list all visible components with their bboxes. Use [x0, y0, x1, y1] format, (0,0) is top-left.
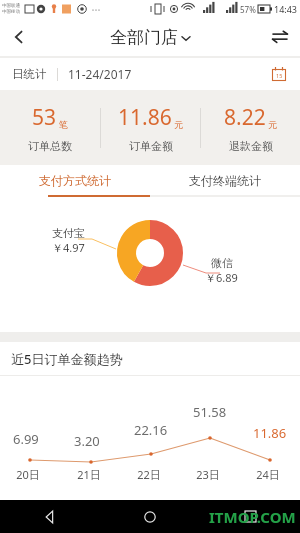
- staticText: 中国联通: [2, 3, 20, 9]
- staticText: 23日: [196, 467, 220, 482]
- staticText: 53: [32, 103, 57, 132]
- button[interactable]: 53: [0, 103, 100, 153]
- button[interactable]: Pick date: [266, 61, 292, 87]
- staticText: 元: [174, 119, 183, 130]
- staticText: 8.22: [224, 103, 266, 132]
- button[interactable]: 8.22: [201, 103, 300, 153]
- button[interactable]: Recents: [200, 500, 300, 533]
- button[interactable]: Back: [0, 18, 38, 56]
- staticText: ￥6.89: [205, 270, 238, 285]
- staticText: 全部门店: [110, 27, 178, 48]
- button[interactable]: 11.86: [101, 103, 200, 153]
- staticText: 24日: [256, 467, 280, 482]
- button[interactable]: 支付终端统计: [150, 165, 300, 195]
- staticText: 订单金额: [129, 139, 173, 153]
- staticText: 21日: [77, 467, 101, 482]
- staticText: 11-24/2017: [68, 66, 132, 82]
- staticText: ￥4.97: [52, 240, 85, 255]
- staticText: 15: [276, 72, 283, 79]
- staticText: 51.58: [193, 403, 227, 421]
- staticText: 支付方式统计: [39, 173, 111, 188]
- button[interactable]: 支付方式统计: [0, 165, 150, 195]
- button[interactable]: 全部门店: [110, 27, 191, 48]
- button[interactable]: Home: [100, 500, 200, 533]
- staticText: 20日: [16, 467, 40, 482]
- staticText: 笔: [59, 119, 68, 130]
- staticText: 6.99: [13, 430, 39, 448]
- staticText: 元: [268, 119, 277, 130]
- staticText: 订单总数: [28, 139, 72, 153]
- staticText: 11.86: [253, 424, 287, 442]
- staticText: ITMOP.COM: [209, 507, 296, 527]
- staticText: 微信: [211, 256, 233, 270]
- staticText: 近5日订单金额趋势: [11, 350, 123, 368]
- staticText: 57%: [240, 4, 256, 15]
- staticText: 日统计: [12, 67, 47, 81]
- staticText: 22.16: [134, 421, 168, 439]
- staticText: 3.20: [74, 432, 100, 450]
- staticText: 11.86: [118, 103, 172, 132]
- staticText: 中国移动: [2, 9, 20, 15]
- staticText: 支付宝: [52, 226, 85, 240]
- button[interactable]: Switch: [260, 18, 300, 56]
- button[interactable]: Back: [0, 500, 100, 533]
- staticText: 22日: [137, 467, 161, 482]
- staticText: 退款金额: [229, 139, 273, 153]
- staticText: 14:43: [274, 3, 298, 15]
- staticText: 支付终端统计: [189, 173, 261, 188]
